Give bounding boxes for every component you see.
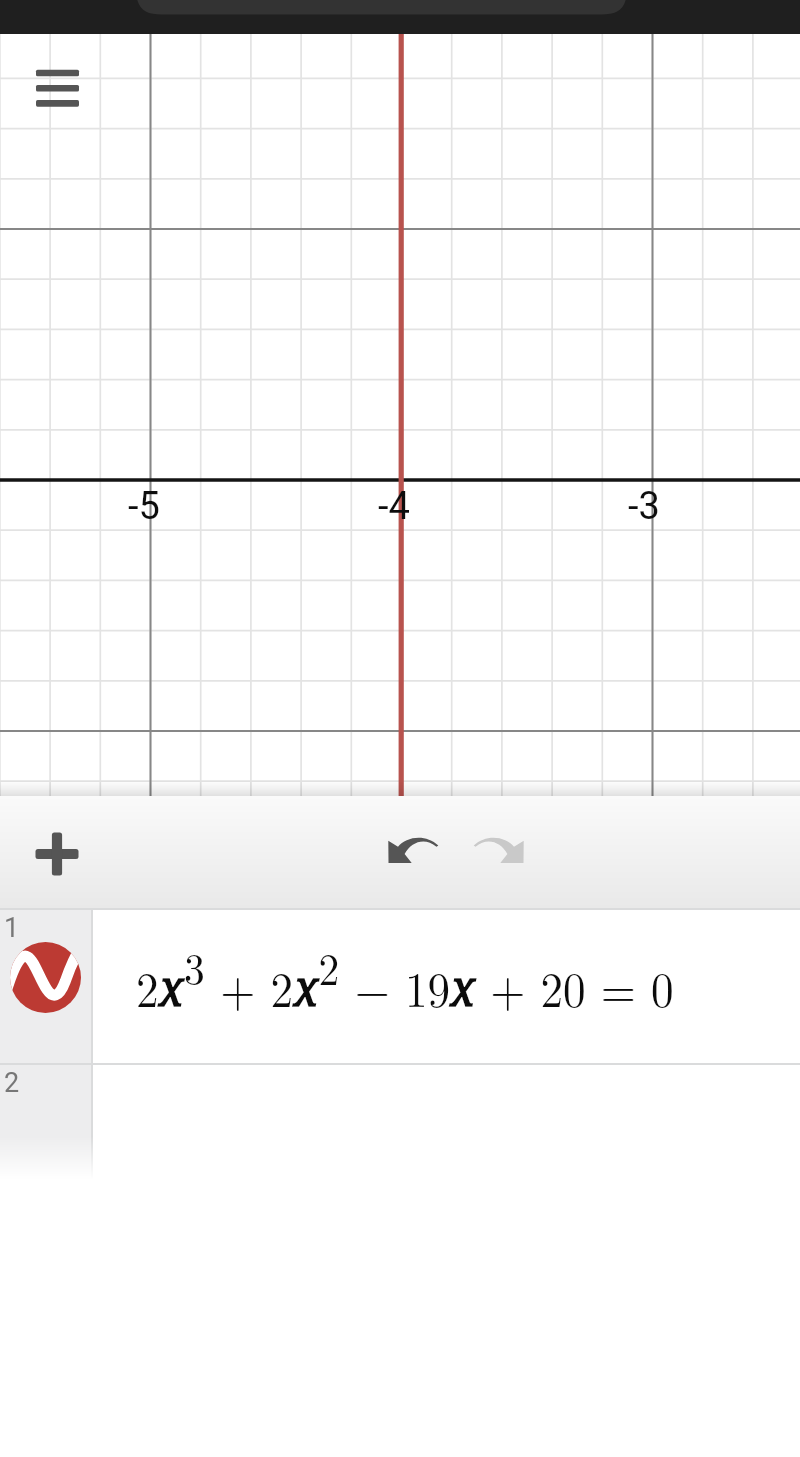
- button[interactable]: 1: [0, 910, 800, 1063]
- button[interactable]: 2: [0, 1065, 800, 1180]
- staticText: + 20 = 0: [475, 952, 674, 1021]
- staticText: -4: [378, 484, 410, 529]
- button[interactable]: Menu: [22, 53, 94, 121]
- staticText: 2: [319, 934, 340, 998]
- staticText: -5: [128, 484, 160, 529]
- staticText: x: [159, 954, 184, 1021]
- staticText: x: [450, 954, 475, 1021]
- button[interactable]: Add expression: [22, 821, 92, 885]
- staticText: − 19: [340, 952, 450, 1021]
- staticText: 3: [184, 934, 205, 998]
- staticText: x: [294, 954, 319, 1021]
- button[interactable]: Undo: [382, 831, 450, 881]
- staticText: 1: [4, 912, 20, 944]
- staticText: 2: [136, 952, 159, 1021]
- staticText: + 2: [205, 952, 294, 1021]
- staticText: -3: [628, 484, 660, 529]
- button[interactable]: Redo: [462, 831, 530, 881]
- staticText: 2: [4, 1067, 20, 1099]
